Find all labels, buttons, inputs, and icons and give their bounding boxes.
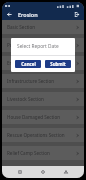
staticText: Select Report Date [17, 43, 59, 50]
staticText: Submit [50, 61, 66, 67]
button[interactable]: Basic Section [2, 20, 84, 34]
staticText: Livestock Section [7, 96, 44, 102]
staticText: House Damaged Section [7, 114, 61, 120]
button[interactable]: Rescue Operations Section [2, 128, 84, 142]
button[interactable]: Logout [72, 10, 81, 19]
button[interactable]: Infrastructure Section [2, 74, 84, 88]
button[interactable]: Back [15, 167, 25, 177]
button[interactable]: Back [5, 10, 14, 19]
staticText: Relief Camp Section [7, 150, 50, 156]
staticText: Population Affected Section [7, 42, 67, 48]
staticText: Basic Section [7, 24, 36, 30]
button[interactable]: Recent apps [61, 167, 71, 177]
staticText: Infrastructure Section [7, 78, 55, 84]
button[interactable]: House Damaged Section [2, 110, 84, 124]
button[interactable]: Livestock Section [2, 92, 84, 106]
button[interactable]: Home [38, 167, 48, 177]
button[interactable]: Submit [45, 60, 71, 68]
staticText: Rescue Operations Section [7, 132, 65, 138]
button[interactable]: Cancel [15, 60, 41, 68]
staticText: Cancel [21, 61, 36, 67]
button[interactable]: Population Affected Section [2, 38, 84, 52]
staticText: Erosion [18, 11, 38, 18]
staticText: Eroded Section [7, 60, 40, 66]
button[interactable]: Eroded Section [2, 56, 84, 70]
button[interactable]: Relief Camp Section [2, 146, 84, 160]
